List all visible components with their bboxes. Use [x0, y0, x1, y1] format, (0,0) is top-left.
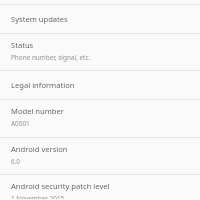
button[interactable]: Legal information — [0, 71, 200, 99]
staticText: System updates — [11, 14, 68, 24]
staticText: Model number — [11, 106, 64, 116]
button[interactable]: Android security patch level — [0, 175, 200, 199]
button[interactable]: Model number — [0, 100, 200, 137]
staticText: Android version — [11, 144, 68, 154]
staticText: Status — [11, 40, 34, 50]
button[interactable]: System updates — [0, 5, 200, 33]
staticText: 6.0 — [11, 157, 21, 166]
button[interactable]: Status — [0, 34, 200, 70]
staticText: A0001 — [11, 119, 30, 128]
staticText: Legal information — [11, 80, 75, 90]
staticText: Phone number, signal, etc. — [11, 53, 91, 62]
staticText: 1 November 2015 — [11, 194, 65, 199]
button[interactable]: Android version — [0, 138, 200, 174]
staticText: Android security patch level — [11, 181, 110, 191]
